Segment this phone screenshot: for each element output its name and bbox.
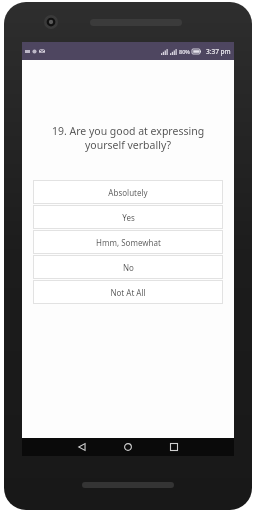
button[interactable]: Back [59, 438, 105, 456]
button[interactable]: Home [105, 438, 151, 456]
button[interactable]: No [33, 255, 223, 279]
staticText: 19. Are you good at expressing yourself … [36, 124, 220, 152]
staticText: Hmm, Somewhat [96, 237, 161, 248]
staticText: Not At All [110, 287, 146, 298]
staticText: No [123, 262, 134, 273]
staticText: Absolutely [108, 187, 148, 198]
button[interactable]: Not At All [33, 280, 223, 304]
staticText: Yes [122, 212, 135, 223]
staticText: 3:37 pm [206, 47, 231, 56]
staticText: 80% [179, 48, 190, 55]
button[interactable]: Absolutely [33, 180, 223, 204]
button[interactable]: Hmm, Somewhat [33, 230, 223, 254]
button[interactable]: Yes [33, 205, 223, 229]
button[interactable]: Recent apps [151, 438, 197, 456]
